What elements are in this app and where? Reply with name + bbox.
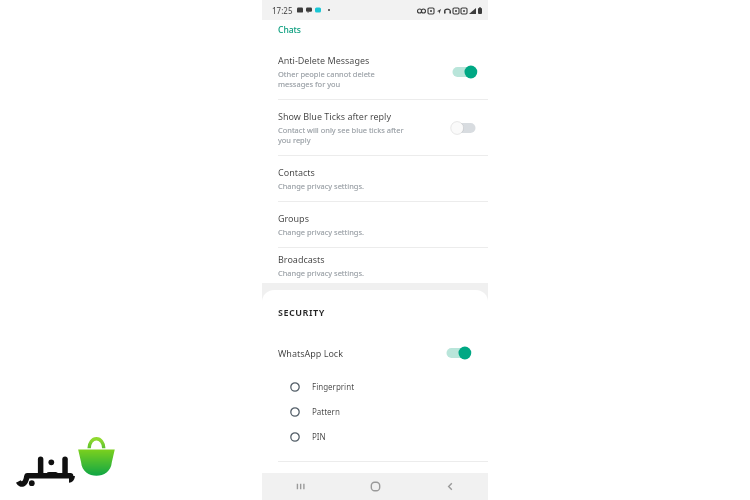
- button[interactable]: Home: [338, 473, 413, 500]
- staticText: Contacts: [278, 166, 315, 178]
- button[interactable]: Fingerprint: [262, 374, 488, 399]
- button[interactable]: Broadcasts: [262, 248, 488, 283]
- staticText: Groups: [278, 212, 309, 224]
- staticText: Anti-Delete Messages: [278, 54, 370, 66]
- button[interactable]: Back: [413, 473, 488, 500]
- staticText: Show Blue Ticks after reply: [278, 110, 392, 122]
- staticText: Change privacy settings.: [278, 227, 365, 237]
- staticText: Contact will only see blue ticks after: [278, 125, 404, 135]
- button[interactable]: Toggle on: [444, 345, 472, 361]
- staticText: Change privacy settings.: [278, 181, 365, 191]
- staticText: you reply: [278, 135, 311, 145]
- button[interactable]: Recent apps: [262, 473, 338, 500]
- button[interactable]: Toggle on: [450, 64, 478, 80]
- staticText: 17:25: [272, 5, 293, 16]
- staticText: Fingerprint: [312, 381, 355, 392]
- staticText: Change privacy settings.: [278, 268, 365, 278]
- staticText: Pattern: [312, 406, 340, 417]
- staticText: WhatsApp Lock: [278, 347, 444, 359]
- staticText: Broadcasts: [278, 253, 325, 265]
- button[interactable]: PIN: [262, 424, 488, 449]
- staticText: SECURITY: [278, 306, 325, 318]
- staticText: PIN: [312, 431, 326, 442]
- button[interactable]: WhatsApp Lock: [262, 338, 488, 368]
- staticText: Chats: [278, 24, 301, 36]
- button[interactable]: Contacts: [262, 156, 488, 201]
- button[interactable]: Pattern: [262, 399, 488, 424]
- button[interactable]: Bazaar: [8, 431, 130, 495]
- button[interactable]: Groups: [262, 202, 488, 247]
- button[interactable]: Anti-Delete Messages: [262, 44, 488, 99]
- button[interactable]: Toggle off: [450, 120, 478, 136]
- staticText: messages for you: [278, 79, 341, 89]
- staticText: Other people cannot delete: [278, 69, 375, 79]
- button[interactable]: Show Blue Ticks after reply: [262, 100, 488, 155]
